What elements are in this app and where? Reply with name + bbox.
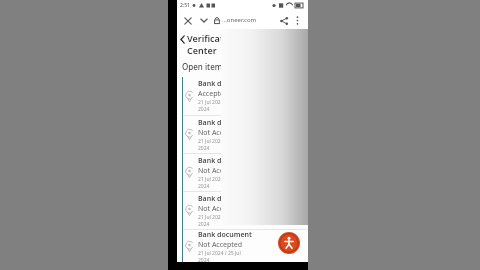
staticText: Verification <box>187 32 238 44</box>
staticText: Not Accepted <box>198 204 243 214</box>
staticText: 2024 <box>198 145 210 152</box>
staticText: Bank document <box>198 194 252 204</box>
staticText: 2024 <box>198 183 210 190</box>
staticText: 2024 <box>198 257 210 262</box>
staticText: Open items <box>182 61 227 72</box>
staticText: Accepted <box>198 89 229 99</box>
staticText: 21 Jul 2024 / 25 Jul <box>198 99 241 106</box>
button[interactable]: Bank document <box>177 191 308 229</box>
staticText: 21 Jul 2024 / 25 Jul <box>198 176 241 183</box>
button[interactable]: Share <box>277 14 290 27</box>
staticText: 2024 <box>198 106 210 113</box>
staticText: 2024 <box>198 221 210 228</box>
button[interactable]: Bank document <box>177 77 308 115</box>
button[interactable]: Accessibility options <box>278 232 300 254</box>
staticText: Bank document <box>198 156 252 166</box>
staticText: Bank document <box>198 79 252 89</box>
button[interactable]: Bank document <box>177 229 308 262</box>
button[interactable]: Bank document <box>177 115 308 153</box>
staticText: 21 Jul 2024 / 25 Jul <box>198 138 241 145</box>
staticText: Center <box>187 44 217 56</box>
button[interactable]: More options <box>291 14 304 27</box>
button[interactable]: Close <box>181 14 194 27</box>
button[interactable]: Verification <box>180 32 304 56</box>
staticText: Bank document <box>198 230 252 240</box>
staticText: 21 Jul 2024 / 25 Jul <box>198 214 241 221</box>
staticText: 2:51 <box>180 2 190 9</box>
button[interactable]: Expand <box>197 14 210 27</box>
staticText: Not Accepted <box>198 166 243 176</box>
staticText: Bank document <box>198 118 252 128</box>
staticText: Not Accepted <box>198 128 243 138</box>
staticText: Not Accepted <box>198 240 243 250</box>
staticText: ...oneer.com <box>222 16 257 24</box>
button[interactable]: Bank document <box>177 153 308 191</box>
staticText: 21 Jul 2024 / 25 Jul <box>198 250 241 257</box>
